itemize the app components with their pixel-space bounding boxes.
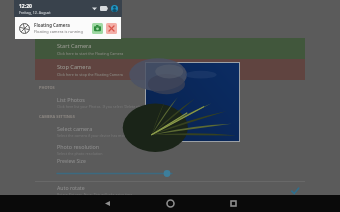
staticText: Select camera bbox=[57, 125, 93, 132]
button[interactable]: Stop camera bbox=[106, 23, 117, 34]
staticText: Stop Camera bbox=[57, 63, 91, 71]
button[interactable]: List Photos bbox=[35, 93, 305, 111]
staticText: Select the camera if your device has mor… bbox=[57, 133, 152, 138]
button[interactable]: User account bbox=[111, 5, 118, 12]
button[interactable]: Auto rotate bbox=[35, 182, 305, 199]
staticText: Click here list your Photos. If you sele… bbox=[57, 104, 152, 109]
button[interactable]: Back bbox=[99, 195, 116, 212]
staticText: Click here to start the Floating Camera bbox=[57, 51, 124, 56]
staticText: Click here to stop the Floating Camera bbox=[57, 72, 123, 77]
button[interactable]: Keep screen on bbox=[35, 200, 305, 212]
staticText: 12:20 bbox=[19, 3, 32, 10]
button[interactable]: Start Camera bbox=[35, 38, 305, 59]
staticText: Start Camera bbox=[57, 42, 92, 50]
other: Battery bbox=[100, 6, 108, 11]
staticText: Select the photo resolution bbox=[57, 151, 103, 156]
staticText: List Photos bbox=[57, 96, 85, 103]
other: Auto rotate checkbox, checked bbox=[290, 186, 300, 196]
staticText: Photo resolution bbox=[57, 143, 100, 150]
button[interactable]: Take photo bbox=[92, 23, 103, 34]
button[interactable]: Stop Camera bbox=[35, 59, 305, 80]
button[interactable]: Floating Camera bbox=[15, 17, 121, 39]
staticText: Floating camera is running bbox=[34, 29, 83, 34]
staticText: CAMERA SETTINGS bbox=[39, 114, 75, 119]
button[interactable]: Photo resolution bbox=[35, 140, 305, 158]
staticText: Rotate Pictures. Note: This will take ex… bbox=[57, 192, 134, 197]
button[interactable]: Select camera bbox=[35, 122, 305, 140]
staticText: Floating Camera bbox=[34, 22, 70, 28]
button[interactable]: Recent apps bbox=[225, 195, 242, 212]
other: Wi-Fi bbox=[92, 6, 97, 11]
staticText: PHOTOS bbox=[39, 85, 55, 90]
staticText: Preview Size bbox=[57, 158, 86, 165]
staticText: Auto rotate bbox=[57, 184, 85, 191]
staticText: Freitag, 12. August bbox=[19, 10, 51, 15]
button[interactable] bbox=[57, 169, 172, 178]
button[interactable]: Home bbox=[162, 195, 179, 212]
